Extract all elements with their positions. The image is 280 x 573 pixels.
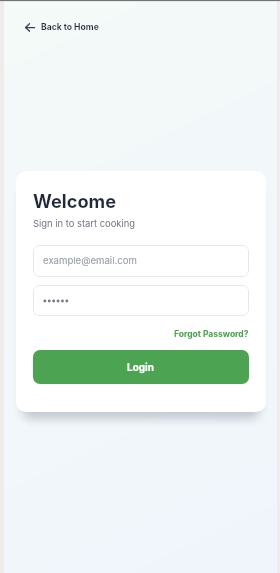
button[interactable]: Forgot Password? bbox=[174, 329, 249, 339]
staticText: Welcome bbox=[33, 190, 117, 212]
staticText: Forgot Password? bbox=[174, 329, 249, 339]
staticText: example@email.com bbox=[43, 255, 137, 267]
button[interactable]: Login bbox=[33, 350, 249, 384]
button[interactable] bbox=[33, 285, 249, 316]
staticText: Login bbox=[127, 361, 155, 373]
staticText: Sign in to start cooking bbox=[33, 218, 136, 229]
staticText: Back to Home bbox=[41, 22, 99, 32]
button[interactable]: Back to Home bbox=[23, 19, 101, 35]
button[interactable]: example@email.com bbox=[33, 245, 249, 277]
